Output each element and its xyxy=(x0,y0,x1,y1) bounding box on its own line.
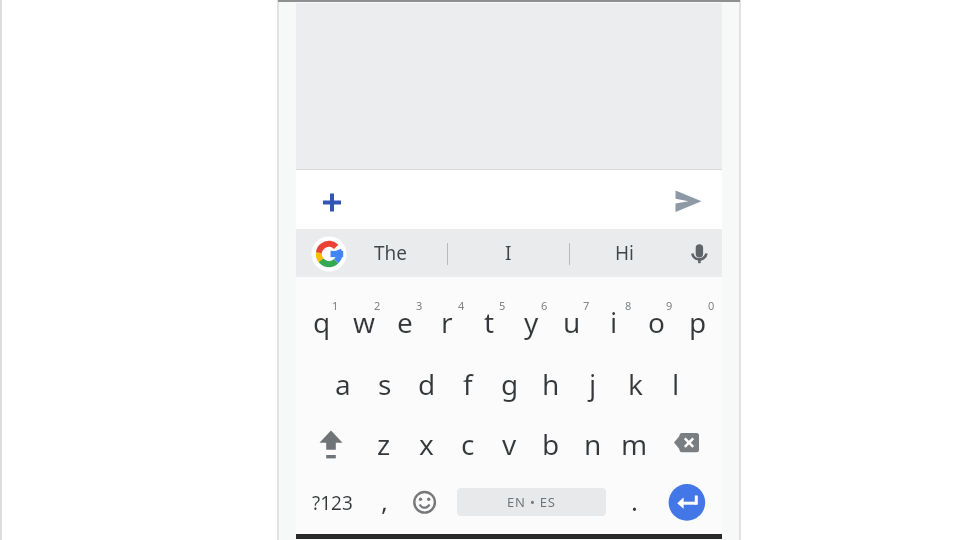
staticText: y xyxy=(524,303,539,341)
button[interactable]: 7 xyxy=(578,297,595,313)
staticText: o xyxy=(648,303,665,341)
button[interactable] xyxy=(311,236,347,272)
staticText: EN • ES xyxy=(507,493,556,511)
staticText: r xyxy=(441,303,453,341)
button[interactable]: f xyxy=(447,356,489,412)
button[interactable]: EN • ES xyxy=(457,488,606,516)
staticText: m xyxy=(621,425,648,463)
button[interactable] xyxy=(316,186,348,218)
button[interactable]: 4 xyxy=(453,297,470,313)
staticText: h xyxy=(542,365,560,403)
staticText: j xyxy=(589,365,597,403)
button[interactable]: a xyxy=(322,356,364,412)
button[interactable]: 1 xyxy=(327,297,344,313)
staticText: 5 xyxy=(499,298,506,313)
staticText: ?123 xyxy=(312,490,353,516)
button[interactable]: c xyxy=(447,416,489,472)
button[interactable]: , xyxy=(363,472,405,528)
button[interactable]: g xyxy=(489,356,531,412)
button[interactable]: j xyxy=(572,356,614,412)
button[interactable]: k xyxy=(614,356,656,412)
button[interactable]: The xyxy=(346,229,436,277)
staticText: 4 xyxy=(458,298,465,313)
button[interactable]: I xyxy=(463,229,553,277)
button[interactable]: Hi xyxy=(579,229,669,277)
button[interactable]: u xyxy=(551,294,593,350)
staticText: 8 xyxy=(625,298,632,313)
button[interactable]: 6 xyxy=(536,297,553,313)
staticText: g xyxy=(501,365,519,403)
button[interactable]: z xyxy=(363,416,405,472)
button[interactable]: x xyxy=(405,416,447,472)
staticText: n xyxy=(584,425,602,463)
staticText: The xyxy=(374,240,408,266)
staticText: c xyxy=(461,425,475,463)
button[interactable] xyxy=(457,488,606,516)
staticText: t xyxy=(484,303,495,341)
button[interactable]: . xyxy=(613,472,655,528)
staticText: i xyxy=(610,303,618,341)
button[interactable]: ?123 xyxy=(308,475,356,531)
button[interactable]: d xyxy=(406,356,448,412)
button[interactable]: r xyxy=(426,294,468,350)
button[interactable]: 0 xyxy=(703,297,720,313)
staticText: 9 xyxy=(666,298,673,313)
button[interactable] xyxy=(296,170,722,229)
staticText: . xyxy=(631,483,638,518)
button[interactable]: n xyxy=(572,416,614,472)
staticText: 6 xyxy=(541,298,548,313)
staticText: 1 xyxy=(332,298,339,313)
staticText: 2 xyxy=(374,298,381,313)
staticText: x xyxy=(419,425,434,463)
button[interactable]: 9 xyxy=(661,297,678,313)
button[interactable]: 3 xyxy=(411,297,428,313)
button[interactable]: o xyxy=(635,294,677,350)
button[interactable]: m xyxy=(613,416,655,472)
button[interactable]: h xyxy=(530,356,572,412)
staticText: 0 xyxy=(708,298,715,313)
staticText: f xyxy=(463,365,473,403)
button[interactable] xyxy=(308,418,354,470)
button[interactable]: v xyxy=(488,416,530,472)
button[interactable]: 5 xyxy=(494,297,511,313)
staticText: e xyxy=(397,303,413,341)
button[interactable] xyxy=(664,418,710,470)
button[interactable] xyxy=(668,484,706,522)
staticText: , xyxy=(381,483,388,518)
button[interactable]: e xyxy=(384,294,426,350)
staticText: 7 xyxy=(583,298,590,313)
staticText: 3 xyxy=(416,298,423,313)
button[interactable] xyxy=(684,236,716,272)
button[interactable]: s xyxy=(364,356,406,412)
button[interactable]: l xyxy=(655,356,697,412)
staticText: q xyxy=(313,303,331,341)
button[interactable]: 2 xyxy=(369,297,386,313)
button[interactable]: 8 xyxy=(620,297,637,313)
staticText: w xyxy=(353,303,376,341)
staticText: b xyxy=(542,425,560,463)
button[interactable]: w xyxy=(343,294,385,350)
button[interactable]: b xyxy=(530,416,572,472)
staticText: p xyxy=(689,303,707,341)
staticText: u xyxy=(563,303,581,341)
button[interactable]: i xyxy=(593,294,635,350)
staticText: I xyxy=(505,240,512,266)
staticText: Hi xyxy=(615,240,634,266)
staticText: z xyxy=(377,425,391,463)
button[interactable] xyxy=(404,478,446,526)
staticText: a xyxy=(335,365,351,403)
button[interactable] xyxy=(670,185,704,217)
button[interactable]: t xyxy=(468,294,510,350)
staticText: k xyxy=(628,365,643,403)
staticText: d xyxy=(418,365,436,403)
staticText: v xyxy=(502,425,517,463)
staticText: l xyxy=(672,365,680,403)
button[interactable]: p xyxy=(677,294,719,350)
button[interactable]: y xyxy=(510,294,552,350)
staticText: s xyxy=(378,365,392,403)
button[interactable]: q xyxy=(301,294,343,350)
